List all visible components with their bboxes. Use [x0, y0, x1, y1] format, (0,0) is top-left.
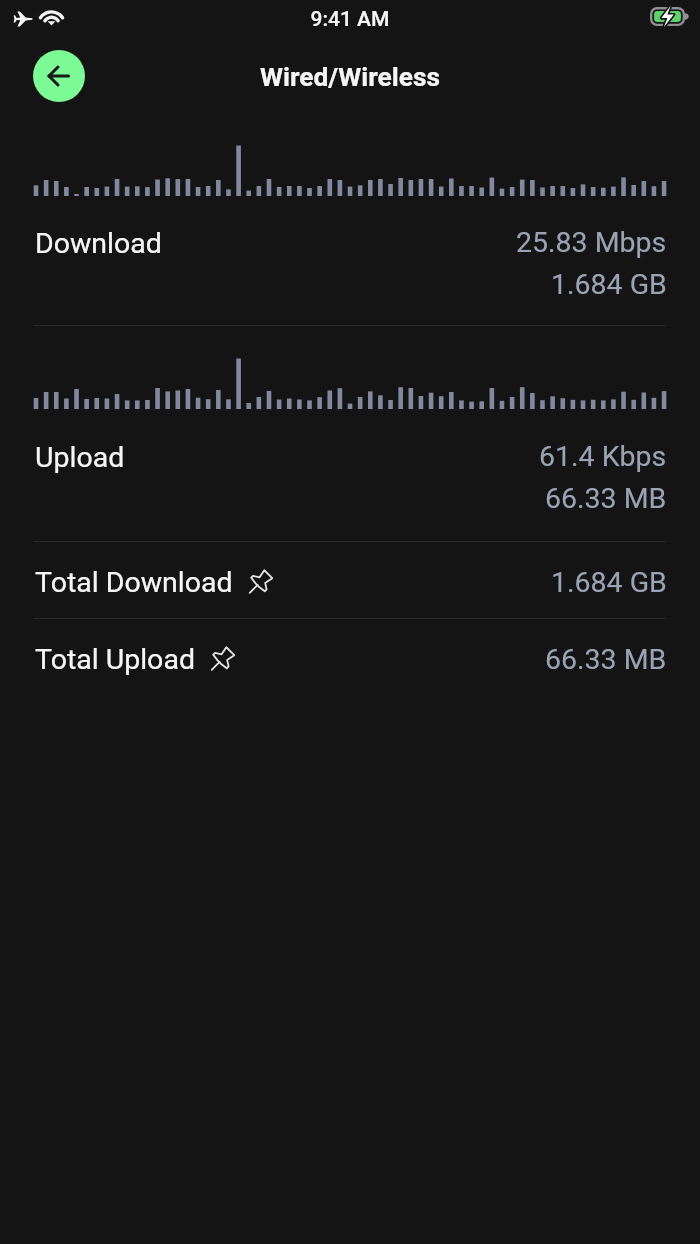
staticText: 66.33 MB — [545, 482, 667, 515]
staticText: Download — [35, 227, 162, 260]
staticText: Upload — [35, 441, 125, 474]
staticText: 1.684 GB — [551, 268, 667, 301]
button[interactable]: Total Download — [0, 542, 700, 619]
staticText: 66.33 MB — [545, 643, 667, 676]
staticText: Total Download — [35, 566, 233, 599]
staticText: 61.4 Kbps — [539, 440, 667, 473]
staticText: 1.684 GB — [551, 566, 667, 599]
button[interactable]: Back — [33, 50, 85, 102]
staticText: Total Upload — [35, 643, 195, 676]
staticText: 9:41 AM — [0, 7, 700, 32]
staticText: 25.83 Mbps — [516, 226, 667, 259]
button[interactable]: Total Upload — [0, 619, 700, 696]
staticText: Wired/Wireless — [0, 62, 700, 93]
